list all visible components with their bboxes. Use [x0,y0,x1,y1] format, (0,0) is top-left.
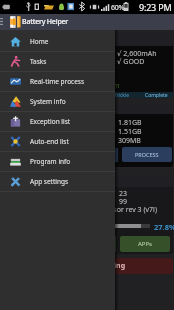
button[interactable]: App settings [0,172,115,192]
staticText: 60% [111,3,124,13]
button[interactable]: Tasks [0,52,115,72]
staticText: Exception list [30,117,71,126]
staticText: 27.8% [154,222,174,232]
staticText: APPs [138,240,152,248]
staticText: Complete [145,92,168,98]
staticText: Trickle [114,92,130,98]
button[interactable]: APPs [120,236,170,252]
staticText: Tasks [30,57,47,66]
staticText: Program info [30,157,71,166]
staticText: Real-time process [30,77,85,86]
button[interactable]: Exception list [0,112,115,132]
staticText: 99 [119,197,128,207]
button[interactable]: System info [0,92,115,112]
staticText: ) [113,70,116,80]
staticText: System info [30,97,66,106]
staticText: √ GOOD [117,57,145,67]
staticText: 1.81GB [118,118,142,128]
button[interactable]: Program info [0,152,115,172]
staticText: Battery Helper [22,17,69,27]
staticText: 309MB [118,136,141,146]
staticText: 1.51GB [118,127,142,137]
staticText: ing [114,261,126,271]
button[interactable]: Real-time process [0,72,115,92]
staticText: ) [113,214,116,224]
button[interactable] [2,92,37,98]
staticText: √ 2,600mAh [117,49,157,59]
staticText: Home [30,37,49,46]
button[interactable]: Complete [139,92,173,98]
button[interactable]: Trickle [105,92,139,98]
staticText: ssor rev 3 (v7l) [110,205,157,215]
staticText: Auto-end list [30,137,69,146]
staticText: App settings [30,177,69,186]
button[interactable]: Open navigation drawer [0,14,9,30]
button[interactable]: Home [0,32,115,52]
staticText: m [113,81,120,91]
button[interactable]: PROCESS [122,147,172,162]
staticText: 9:23 PM [139,1,172,13]
staticText: 23 [119,189,128,199]
button[interactable]: Auto-end list [0,132,115,152]
staticText: PROCESS [135,151,159,158]
